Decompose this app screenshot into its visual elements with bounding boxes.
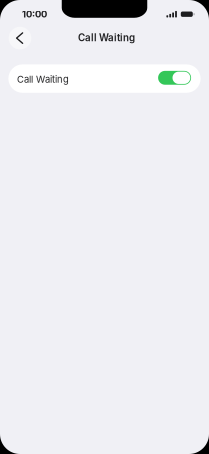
staticText: Call Waiting: [17, 74, 69, 85]
button[interactable]: Call Waiting: [8, 64, 201, 93]
staticText: 10:00: [22, 9, 47, 20]
button[interactable]: Back: [9, 27, 31, 50]
staticText: Call Waiting: [78, 32, 135, 43]
